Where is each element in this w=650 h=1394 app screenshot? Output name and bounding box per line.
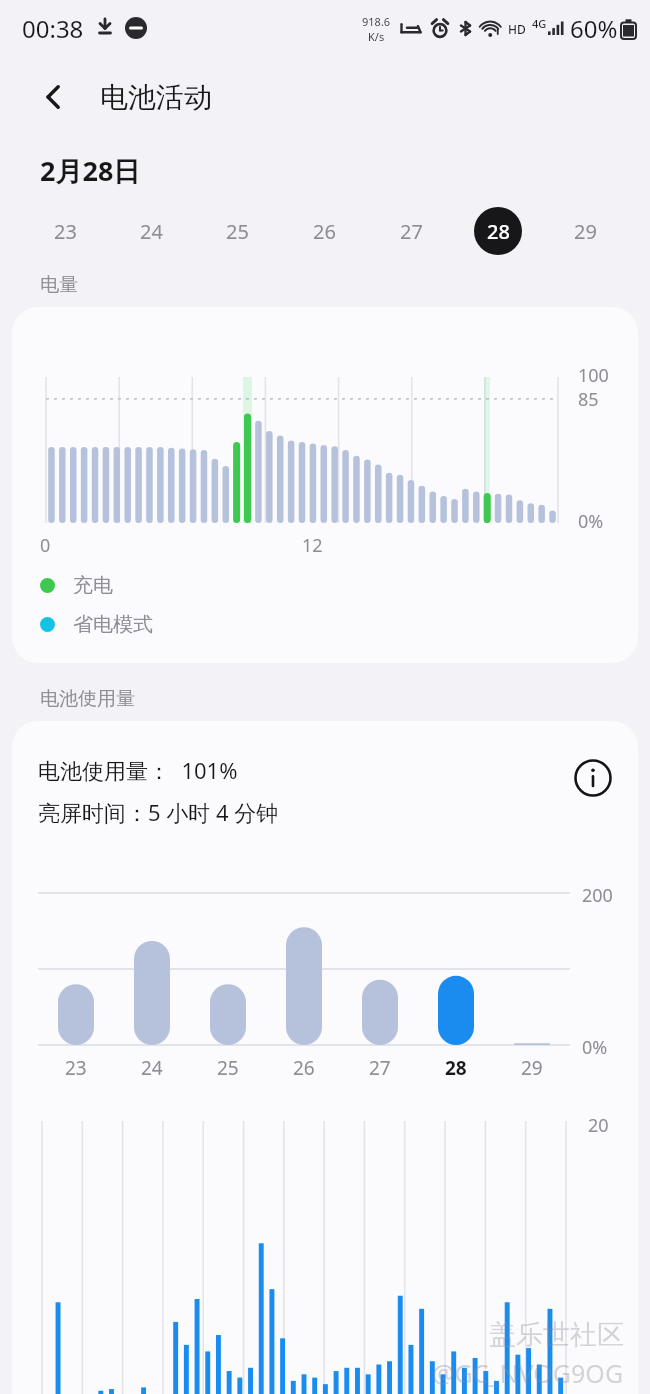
- staticText: 电量: [40, 273, 78, 297]
- staticText: 电池使用量： 101%: [38, 755, 238, 785]
- button[interactable]: 100: [12, 307, 638, 663]
- staticText: 200: [582, 883, 613, 908]
- staticText: 省电模式: [73, 612, 153, 637]
- staticText: K/s: [368, 29, 385, 44]
- staticText: 0%: [578, 509, 604, 534]
- staticText: 2月28日: [40, 152, 141, 189]
- button[interactable]: 29: [561, 207, 609, 255]
- button[interactable]: 27: [387, 207, 435, 255]
- staticText: 23: [54, 218, 77, 245]
- staticText: 12: [302, 533, 323, 558]
- staticText: 27: [369, 1055, 391, 1081]
- staticText: 28: [487, 218, 510, 245]
- staticText: 电池使用量: [40, 687, 135, 711]
- staticText: 25: [217, 1055, 239, 1081]
- staticText: 60%: [570, 12, 618, 45]
- button[interactable]: Info: [570, 755, 616, 801]
- button[interactable]: 23: [41, 207, 89, 255]
- staticText: HD: [508, 21, 526, 37]
- staticText: 亮屏时间：5 小时 4 分钟: [38, 797, 279, 827]
- staticText: 85: [578, 387, 599, 412]
- staticText: 电池活动: [100, 80, 212, 115]
- staticText: 盖乐世社区: [489, 1318, 624, 1352]
- staticText: 23: [65, 1055, 87, 1081]
- button[interactable]: 充电: [40, 573, 113, 598]
- staticText: 29: [574, 218, 597, 245]
- staticText: 0%: [582, 1035, 608, 1060]
- staticText: 27: [400, 218, 423, 245]
- staticText: @GC_NVOG9OG: [432, 1356, 624, 1390]
- staticText: 20: [588, 1113, 609, 1138]
- button[interactable]: 省电模式: [40, 612, 153, 637]
- staticText: 26: [313, 218, 336, 245]
- staticText: 26: [293, 1055, 315, 1081]
- staticText: 918.6: [362, 14, 391, 29]
- staticText: 充电: [73, 573, 113, 598]
- button[interactable]: 26: [300, 207, 348, 255]
- staticText: 00:38: [22, 12, 84, 45]
- staticText: 24: [140, 218, 163, 245]
- staticText: 100: [578, 363, 609, 388]
- button[interactable]: Back: [30, 73, 78, 121]
- staticText: 24: [141, 1055, 163, 1081]
- button[interactable]: 28: [474, 207, 522, 255]
- staticText: 29: [521, 1055, 543, 1081]
- staticText: 4G: [532, 16, 547, 31]
- button[interactable]: 24: [127, 207, 175, 255]
- staticText: 25: [226, 218, 249, 245]
- button[interactable]: 25: [213, 207, 261, 255]
- staticText: 28: [445, 1055, 467, 1081]
- staticText: 0: [40, 533, 51, 558]
